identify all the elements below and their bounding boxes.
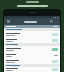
button[interactable]: Status <box>4 31 60 37</box>
button[interactable]: Status <box>4 67 60 72</box>
button[interactable]: Status <box>4 37 60 43</box>
button[interactable]: Status <box>4 58 60 64</box>
button[interactable] <box>12 21 49 23</box>
button[interactable]: Open navigation menu <box>6 19 11 24</box>
button[interactable] <box>4 52 60 58</box>
button[interactable]: Status <box>52 48 58 51</box>
button[interactable]: Status <box>52 68 58 71</box>
button[interactable]: Status <box>52 33 58 36</box>
button[interactable]: Search <box>49 19 54 24</box>
button[interactable]: More options <box>54 20 58 24</box>
button[interactable]: Status <box>52 60 58 63</box>
button[interactable]: Status <box>4 46 60 52</box>
button[interactable]: Status <box>52 39 58 42</box>
